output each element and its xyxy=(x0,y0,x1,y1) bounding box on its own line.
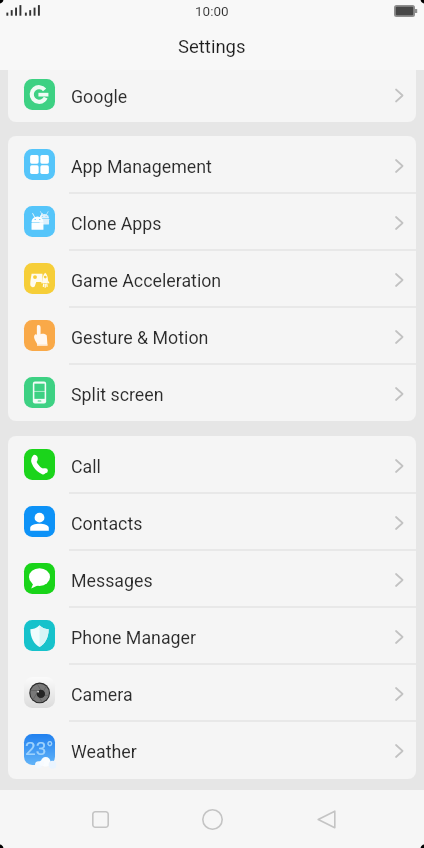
button[interactable]: Game Acceleration xyxy=(8,250,416,307)
staticText: Google xyxy=(71,86,128,107)
button[interactable]: Camera xyxy=(8,664,416,721)
staticText: Camera xyxy=(71,684,133,705)
staticText: Messages xyxy=(71,570,153,591)
staticText: Gesture & Motion xyxy=(71,327,209,348)
staticText: Game Acceleration xyxy=(71,270,222,291)
staticText: 23° xyxy=(25,737,54,759)
staticText: Split screen xyxy=(71,384,164,405)
button[interactable]: Messages xyxy=(8,550,416,607)
button[interactable]: Gesture & Motion xyxy=(8,307,416,364)
button[interactable]: Back xyxy=(302,795,350,843)
button[interactable]: Home xyxy=(188,795,236,843)
button[interactable]: Call xyxy=(8,436,416,493)
button[interactable]: Contacts xyxy=(8,493,416,550)
staticText: Clone Apps xyxy=(71,213,162,234)
button[interactable]: 23° xyxy=(8,721,416,778)
button[interactable]: Google xyxy=(8,70,416,120)
staticText: Phone Manager xyxy=(71,627,197,648)
staticText: Settings xyxy=(178,36,246,58)
button[interactable]: Clone Apps xyxy=(8,193,416,250)
staticText: Weather xyxy=(71,741,137,762)
button[interactable]: Split screen xyxy=(8,364,416,421)
staticText: Call xyxy=(71,456,101,477)
button[interactable]: Recents xyxy=(76,795,124,843)
button[interactable]: Phone Manager xyxy=(8,607,416,664)
button[interactable]: App Management xyxy=(8,136,416,193)
staticText: Contacts xyxy=(71,513,143,534)
staticText: App Management xyxy=(71,156,212,177)
staticText: 10:00 xyxy=(195,3,229,19)
